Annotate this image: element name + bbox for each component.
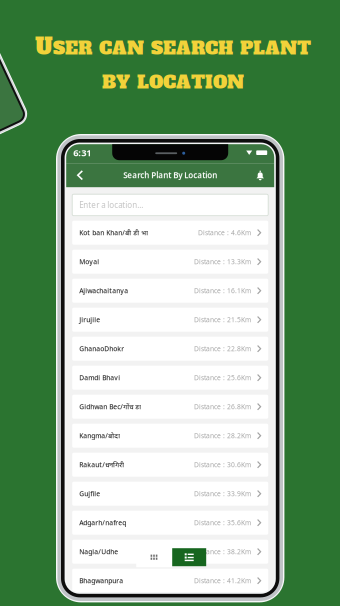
staticText: A xyxy=(176,36,191,60)
staticText: Distance : 22.8Km xyxy=(194,344,251,353)
staticText: Distance : 26.8Km xyxy=(194,402,251,411)
staticText xyxy=(233,31,240,62)
button[interactable]: Input method xyxy=(172,548,206,566)
staticText: Kot ban Khan/बी डी भा xyxy=(79,228,148,237)
staticText: P xyxy=(240,36,253,60)
staticText: S xyxy=(53,36,65,60)
staticText: Moyal xyxy=(79,257,99,266)
staticText: R xyxy=(78,36,92,60)
button[interactable]: Kot ban Khan/बी डी भा xyxy=(72,221,268,245)
staticText: Enter a location... xyxy=(79,200,143,210)
staticText: O xyxy=(149,70,163,94)
button[interactable]: Damdi Bhavi xyxy=(72,366,268,390)
staticText: 6:31 xyxy=(73,146,91,159)
staticText: C xyxy=(205,36,218,60)
staticText: Bhagwanpura xyxy=(79,576,123,585)
staticText: Gujfile xyxy=(79,489,100,498)
staticText: Distance : 33.9Km xyxy=(194,489,251,498)
button[interactable]: Kangma/बोदा xyxy=(72,424,268,448)
staticText: H xyxy=(218,36,233,60)
staticText: A xyxy=(265,36,280,60)
staticText: A xyxy=(112,36,127,60)
button[interactable]: Gidhwan Bec/गोंच डा xyxy=(72,395,268,419)
staticText: Distance : 13.3Km xyxy=(194,257,251,266)
button[interactable]: Nagla/Udhe xyxy=(72,540,268,564)
staticText: E xyxy=(65,36,78,60)
button[interactable]: Adgarh/nafreq xyxy=(72,511,268,535)
staticText: Distance : 38.2Km xyxy=(194,547,251,556)
button[interactable]: GhanaoDhokr xyxy=(72,337,268,361)
button[interactable]: Ajiwachaitanya xyxy=(72,279,268,303)
staticText: T xyxy=(297,36,311,60)
staticText: Y xyxy=(116,70,130,94)
staticText: A xyxy=(176,70,191,94)
staticText: L xyxy=(137,70,149,94)
staticText: R xyxy=(191,36,205,60)
button[interactable]: Back xyxy=(70,163,90,187)
button[interactable]: Gujfile xyxy=(72,482,268,506)
staticText: Distance : 35.6Km xyxy=(194,518,251,527)
staticText: Kangma/बोदा xyxy=(79,431,120,440)
staticText: T xyxy=(191,70,205,94)
staticText: L xyxy=(253,36,265,60)
button[interactable]: Jirujile xyxy=(72,308,268,332)
staticText: Jirujile xyxy=(79,315,100,324)
staticText: U xyxy=(35,31,53,62)
staticText: Distance : 41.2Km xyxy=(194,576,251,585)
staticText xyxy=(92,31,99,62)
staticText: Nagla/Udhe xyxy=(79,547,118,556)
staticText: Gidhwan Bec/गोंच डा xyxy=(79,402,141,411)
button[interactable]: Bhagwanpura xyxy=(72,569,268,593)
staticText: Damdi Bhavi xyxy=(79,373,120,382)
staticText: GhanaoDhokr xyxy=(79,344,124,353)
staticText: Distance : 16.1Km xyxy=(194,286,251,295)
staticText: Distance : 21.5Km xyxy=(194,315,251,324)
staticText: Distance : 25.6Km xyxy=(194,373,251,382)
staticText: Distance : 30.6Km xyxy=(194,460,251,469)
staticText: E xyxy=(163,36,176,60)
staticText: Rakaut/धनगिरी xyxy=(79,460,124,469)
staticText: O xyxy=(213,70,227,94)
staticText: Distance : 4.6Km xyxy=(198,228,251,237)
button[interactable]: Moyal xyxy=(72,250,268,274)
button[interactable]: Nagla/Udhe xyxy=(72,598,268,606)
staticText: I xyxy=(205,70,213,94)
button[interactable]: Keyboard xyxy=(136,547,172,567)
staticText: C xyxy=(99,36,112,60)
staticText: N xyxy=(227,70,244,94)
staticText: Adgarh/nafreq xyxy=(79,518,126,527)
staticText: B xyxy=(102,70,116,94)
staticText: S xyxy=(151,36,163,60)
staticText: Ajiwachaitanya xyxy=(79,286,128,295)
staticText: N xyxy=(280,36,297,60)
staticText: Distance : 28.2Km xyxy=(194,431,251,440)
button[interactable]: Notifications xyxy=(250,163,270,187)
staticText: Search Plant By Location xyxy=(123,170,217,180)
button[interactable]: Rakaut/धनगिरी xyxy=(72,453,268,477)
staticText: N xyxy=(127,36,144,60)
staticText: C xyxy=(163,70,176,94)
